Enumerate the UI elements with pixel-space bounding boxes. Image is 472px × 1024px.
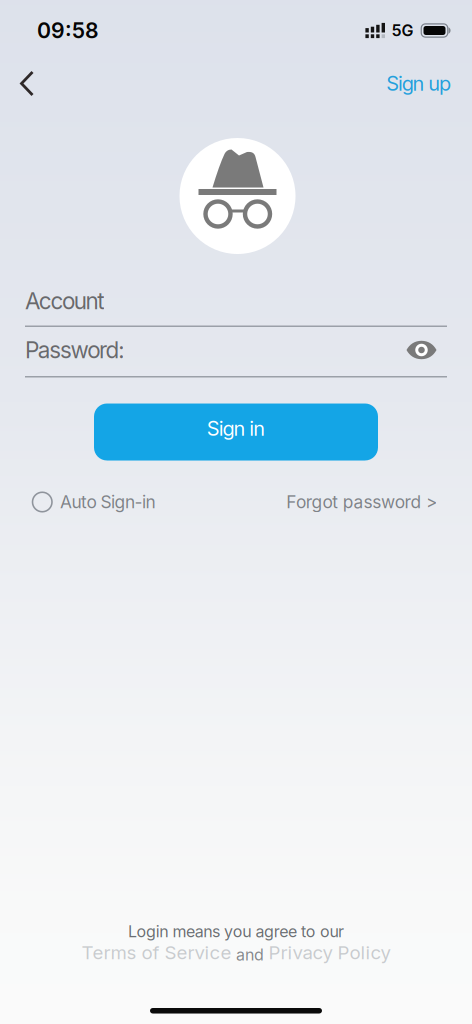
button[interactable]: Show password bbox=[406, 340, 437, 360]
staticText: Login means you agree to our bbox=[128, 922, 344, 941]
staticText: Privacy Policy bbox=[268, 941, 390, 963]
button[interactable]: Privacy Policy bbox=[268, 941, 390, 963]
staticText: Sign up bbox=[386, 72, 451, 95]
staticText: Terms of Service bbox=[81, 941, 231, 963]
button[interactable]: Back bbox=[0, 61, 34, 105]
button[interactable]: Auto Sign-in bbox=[32, 492, 155, 512]
staticText: Account bbox=[25, 288, 104, 314]
staticText: Sign in bbox=[207, 417, 265, 440]
staticText: 09:58 bbox=[37, 18, 99, 43]
button[interactable]: Forgot password > bbox=[286, 492, 437, 512]
staticText: Auto Sign-in bbox=[60, 492, 155, 512]
staticText: Password: bbox=[25, 337, 124, 363]
button[interactable]: Sign in bbox=[94, 403, 378, 460]
button[interactable]: Terms of Service bbox=[81, 941, 231, 963]
staticText: 5G bbox=[391, 21, 413, 40]
staticText: and bbox=[236, 945, 264, 964]
staticText: Forgot password > bbox=[286, 492, 437, 512]
button[interactable]: Sign up bbox=[386, 62, 472, 105]
